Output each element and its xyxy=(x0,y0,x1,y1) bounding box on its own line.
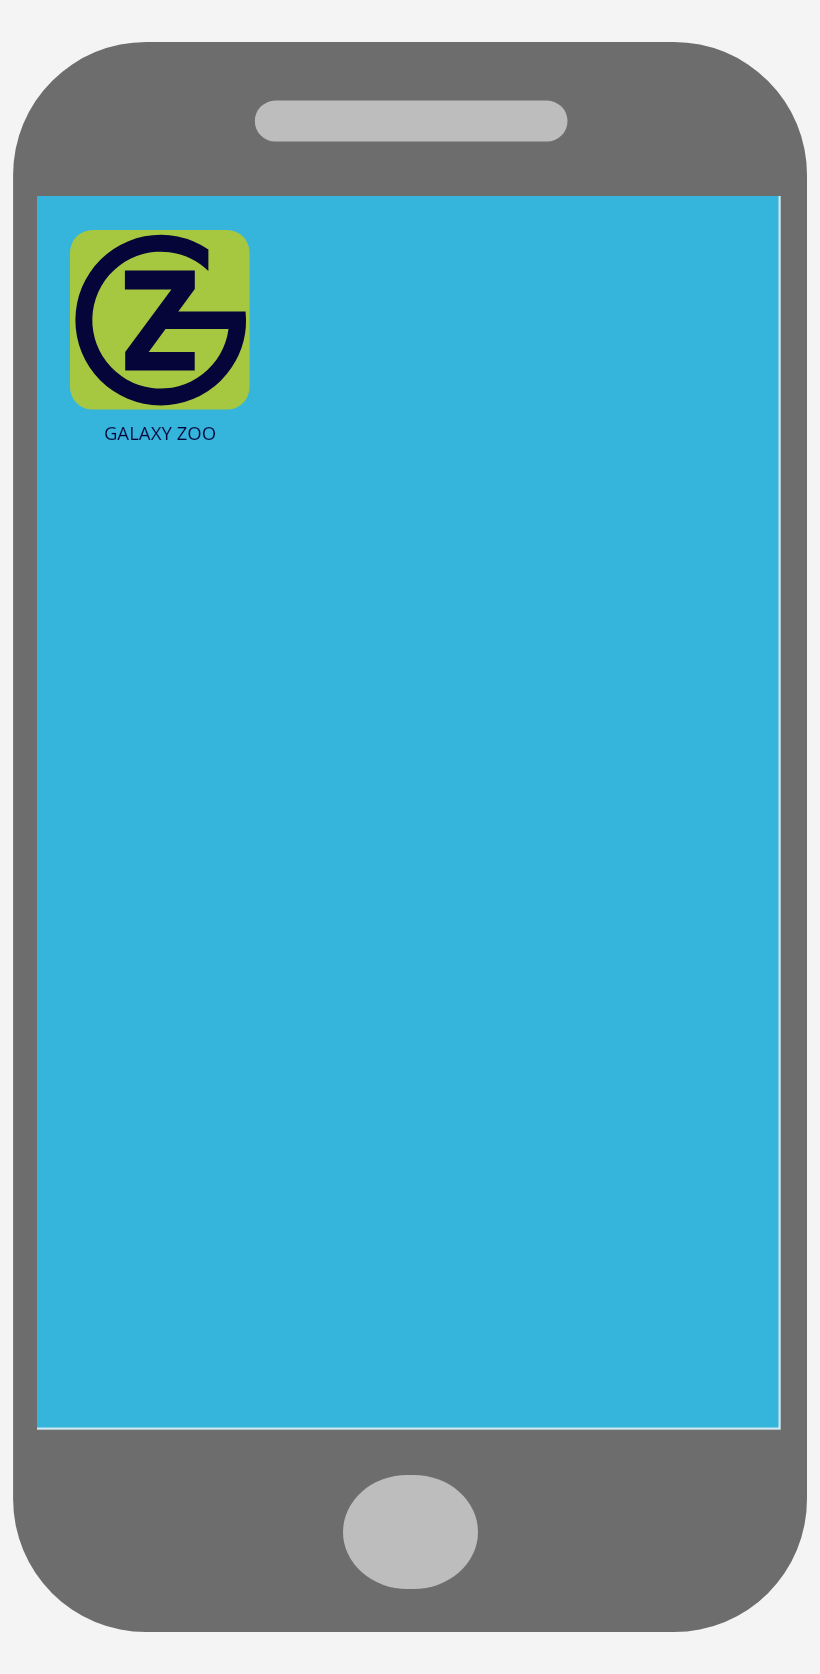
staticText: GALAXY ZOO xyxy=(70,420,250,445)
button[interactable]: Home xyxy=(343,1475,478,1589)
button[interactable]: Galaxy Zoo xyxy=(70,230,250,445)
